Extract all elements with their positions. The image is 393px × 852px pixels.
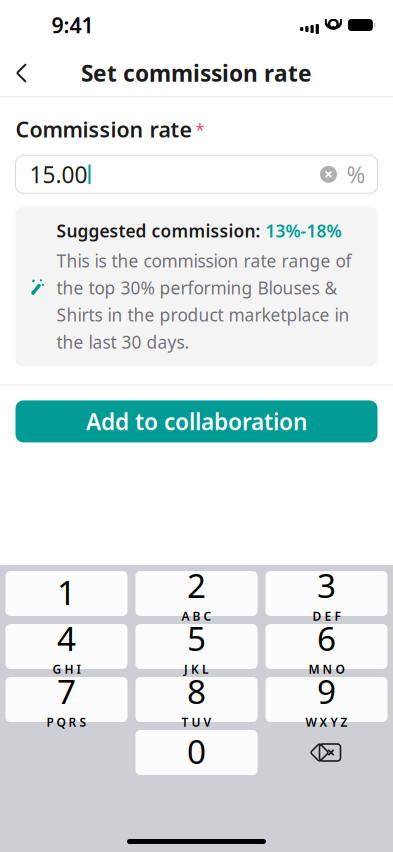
staticText: Suggested commission:: [56, 219, 265, 242]
staticText: 2: [187, 563, 206, 607]
staticText: 0: [187, 729, 206, 773]
staticText: T U V: [181, 714, 211, 730]
staticText: Set commission rate: [81, 58, 312, 88]
button[interactable]: 0: [135, 730, 257, 775]
button[interactable]: 2: [135, 571, 257, 616]
button[interactable]: Back: [0, 51, 43, 95]
button[interactable]: 6: [265, 624, 387, 669]
staticText: *: [191, 118, 204, 140]
staticText: J K L: [184, 661, 209, 677]
button[interactable]: 5: [135, 624, 257, 669]
staticText: G H I: [52, 661, 80, 677]
staticText: Add to collaboration: [86, 406, 307, 436]
staticText: 6: [317, 616, 336, 660]
button[interactable]: 7: [5, 677, 127, 722]
button[interactable]: 1: [5, 571, 127, 616]
button[interactable]: Add to collaboration: [15, 400, 377, 442]
staticText: 5: [187, 616, 206, 660]
button[interactable]: 8: [135, 677, 257, 722]
staticText: 1: [57, 570, 76, 614]
button[interactable]: 9: [265, 677, 387, 722]
staticText: 9: [317, 669, 336, 713]
staticText: 4: [57, 616, 76, 660]
staticText: %: [346, 159, 365, 189]
button[interactable]: 3: [265, 571, 387, 616]
staticText: 3: [317, 563, 336, 607]
staticText: Commission rate: [15, 115, 191, 143]
button[interactable]: Delete: [265, 730, 387, 775]
staticText: 13%-18%: [265, 219, 341, 242]
staticText: M N O: [308, 661, 344, 677]
staticText: P Q R S: [46, 714, 86, 730]
staticText: 7: [57, 669, 76, 713]
staticText: A B C: [181, 608, 211, 624]
button[interactable]: Clear text: [312, 158, 344, 190]
staticText: 15.00: [29, 159, 87, 189]
staticText: 9:41: [51, 11, 93, 39]
staticText: This is the commission rate range of the…: [56, 249, 351, 353]
staticText: W X Y Z: [305, 714, 347, 730]
button[interactable]: 4: [5, 624, 127, 669]
staticText: D E F: [312, 608, 340, 624]
staticText: 8: [187, 669, 206, 713]
